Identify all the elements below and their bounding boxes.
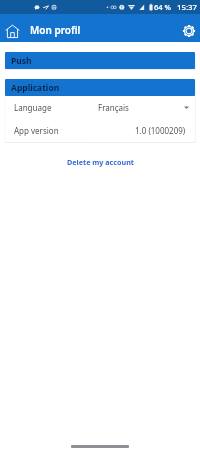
staticText: Push	[11, 55, 32, 67]
staticText: 1.0 (1000209)	[135, 125, 186, 136]
staticText: Français	[98, 102, 129, 113]
staticText: Application	[11, 82, 60, 94]
button[interactable]: Home	[0, 16, 24, 40]
staticText: Delete my account	[67, 157, 134, 167]
button[interactable]: App version	[5, 119, 195, 142]
staticText: 15:37	[177, 2, 197, 13]
button[interactable]: Application	[5, 79, 195, 96]
button[interactable]: Settings	[176, 16, 200, 40]
staticText: 64 %	[154, 2, 171, 12]
staticText: Language	[14, 102, 52, 113]
staticText: App version	[14, 125, 59, 136]
staticText: Mon profil	[30, 23, 81, 37]
button[interactable]: Language	[5, 96, 195, 119]
button[interactable]: Delete my account	[0, 155, 200, 169]
button[interactable]: Push	[5, 52, 195, 69]
